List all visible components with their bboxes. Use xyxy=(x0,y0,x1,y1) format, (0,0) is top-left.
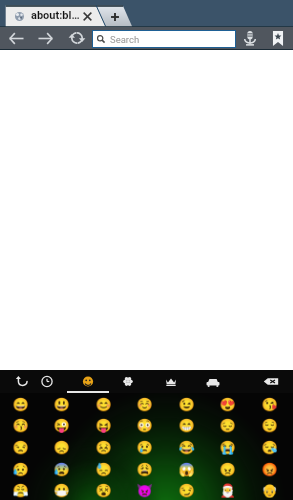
staticText: 😊 xyxy=(95,397,112,412)
button[interactable]: Voice search xyxy=(244,30,256,46)
button[interactable]: 😚 xyxy=(10,415,31,436)
staticText: 😭 xyxy=(219,440,236,455)
staticText: 😱 xyxy=(178,462,195,477)
staticText: 😤 xyxy=(12,483,29,498)
button[interactable]: 😷 xyxy=(51,480,72,500)
staticText: 😞 xyxy=(53,440,70,455)
button[interactable]: Backspace xyxy=(262,374,280,389)
staticText: 😄 xyxy=(12,397,29,412)
staticText: 😒 xyxy=(12,440,29,455)
button[interactable]: Reload xyxy=(70,31,84,45)
staticText: 😪 xyxy=(261,440,278,455)
button[interactable]: 😊 xyxy=(93,394,114,415)
staticText: 😡 xyxy=(261,462,278,477)
button[interactable]: New tab xyxy=(109,11,121,23)
staticText: 😉 xyxy=(178,397,195,412)
button[interactable]: 😂 xyxy=(176,437,197,458)
button[interactable]: Forward xyxy=(38,31,54,46)
button[interactable]: 😳 xyxy=(134,415,155,436)
staticText: 😰 xyxy=(53,462,70,477)
staticText: 😌 xyxy=(261,418,278,433)
button[interactable]: 😁 xyxy=(176,415,197,436)
staticText: 🎅 xyxy=(219,483,236,498)
button[interactable]: 😪 xyxy=(259,437,280,458)
button[interactable]: ☺️ xyxy=(134,394,155,415)
staticText: 😃 xyxy=(53,397,70,412)
button[interactable]: 😏 xyxy=(176,480,197,500)
button[interactable]: 😒 xyxy=(10,437,31,458)
button[interactable]: 😌 xyxy=(259,415,280,436)
staticText: 😏 xyxy=(178,483,195,498)
button[interactable]: Travel xyxy=(204,374,222,389)
staticText: about:bl… xyxy=(31,9,80,22)
button[interactable]: 👴 xyxy=(259,480,280,500)
staticText: 👿 xyxy=(136,483,153,498)
staticText: 😳 xyxy=(136,418,153,433)
button[interactable]: Bookmarks xyxy=(272,31,284,46)
button[interactable]: 😥 xyxy=(10,459,31,480)
button[interactable]: 😠 xyxy=(217,459,238,480)
staticText: 👴 xyxy=(261,483,278,498)
staticText: ☺️ xyxy=(136,397,153,412)
button[interactable]: 😞 xyxy=(51,437,72,458)
button[interactable]: Recent xyxy=(38,374,56,389)
button[interactable]: Close tab xyxy=(82,11,93,22)
staticText: 😩 xyxy=(136,462,153,477)
button[interactable]: 😩 xyxy=(134,459,155,480)
button[interactable]: 😱 xyxy=(176,459,197,480)
button[interactable]: 😉 xyxy=(176,394,197,415)
button[interactable]: 😡 xyxy=(259,459,280,480)
button[interactable]: 👿 xyxy=(134,480,155,500)
button[interactable]: Objects xyxy=(162,374,180,389)
staticText: 😥 xyxy=(12,462,29,477)
button[interactable]: Back xyxy=(8,31,24,46)
staticText: 😚 xyxy=(12,418,29,433)
staticText: 😔 xyxy=(219,418,236,433)
button[interactable]: 😓 xyxy=(93,459,114,480)
button[interactable]: 😍 xyxy=(217,394,238,415)
button[interactable]: 😭 xyxy=(217,437,238,458)
button[interactable]: Search xyxy=(93,31,235,47)
staticText: 😵 xyxy=(95,483,112,498)
staticText: 😓 xyxy=(95,462,112,477)
staticText: 😢 xyxy=(136,440,153,455)
button[interactable]: 😝 xyxy=(93,415,114,436)
button[interactable]: 😵 xyxy=(93,480,114,500)
staticText: 😂 xyxy=(178,440,195,455)
staticText: 😝 xyxy=(95,418,112,433)
button[interactable]: Nature xyxy=(119,374,137,389)
staticText: 😜 xyxy=(53,418,70,433)
button[interactable]: 😣 xyxy=(93,437,114,458)
button[interactable]: 😢 xyxy=(134,437,155,458)
staticText: 😍 xyxy=(219,397,236,412)
button[interactable]: 😤 xyxy=(10,480,31,500)
staticText: 😣 xyxy=(95,440,112,455)
staticText: 😠 xyxy=(219,462,236,477)
button[interactable]: 😜 xyxy=(51,415,72,436)
button[interactable]: 😘 xyxy=(259,394,280,415)
button[interactable]: 😰 xyxy=(51,459,72,480)
button[interactable]: Undo xyxy=(13,374,31,389)
button[interactable]: about:bl… xyxy=(6,5,81,26)
staticText: 😁 xyxy=(178,418,195,433)
staticText: Search xyxy=(110,34,140,45)
staticText: 😘 xyxy=(261,397,278,412)
button[interactable]: 😄 xyxy=(10,394,31,415)
button[interactable]: 😔 xyxy=(217,415,238,436)
button[interactable]: 🎅 xyxy=(217,480,238,500)
button[interactable]: 😃 xyxy=(51,394,72,415)
button[interactable]: Smileys xyxy=(79,374,97,389)
staticText: 😷 xyxy=(53,483,70,498)
